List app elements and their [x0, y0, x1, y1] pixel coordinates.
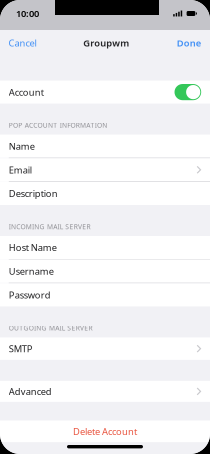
staticText: Host Name: [9, 241, 57, 254]
staticText: Cancel: [9, 37, 37, 49]
button[interactable]: Name: [0, 135, 210, 158]
staticText: POP ACCOUNT INFORMATION: [9, 121, 107, 130]
staticText: Groupwm: [83, 37, 129, 49]
button[interactable]: Username: [0, 260, 210, 283]
button[interactable]: Password: [0, 283, 210, 306]
button[interactable]: Done: [167, 30, 210, 56]
staticText: Done: [177, 37, 201, 49]
button[interactable]: Advanced: [0, 381, 210, 402]
staticText: Username: [9, 265, 54, 277]
staticText: 10:00: [16, 7, 39, 20]
staticText: Description: [9, 187, 58, 200]
button[interactable]: Cancel: [0, 30, 45, 56]
button[interactable]: Delete Account: [0, 420, 210, 442]
button[interactable]: Host Name: [0, 236, 210, 259]
button[interactable]: Description: [0, 182, 210, 205]
button[interactable]: Email: [0, 158, 210, 181]
staticText: Account: [9, 86, 44, 98]
button[interactable]: SMTP: [0, 337, 210, 360]
staticText: Delete Account: [73, 425, 137, 438]
staticText: OUTGOING MAIL SERVER: [9, 323, 93, 332]
button[interactable]: Account: [0, 81, 210, 104]
staticText: Password: [9, 289, 51, 301]
staticText: SMTP: [9, 342, 33, 355]
staticText: Name: [9, 140, 35, 152]
staticText: Advanced: [9, 385, 52, 398]
staticText: Email: [9, 164, 32, 176]
staticText: INCOMING MAIL SERVER: [9, 222, 91, 231]
